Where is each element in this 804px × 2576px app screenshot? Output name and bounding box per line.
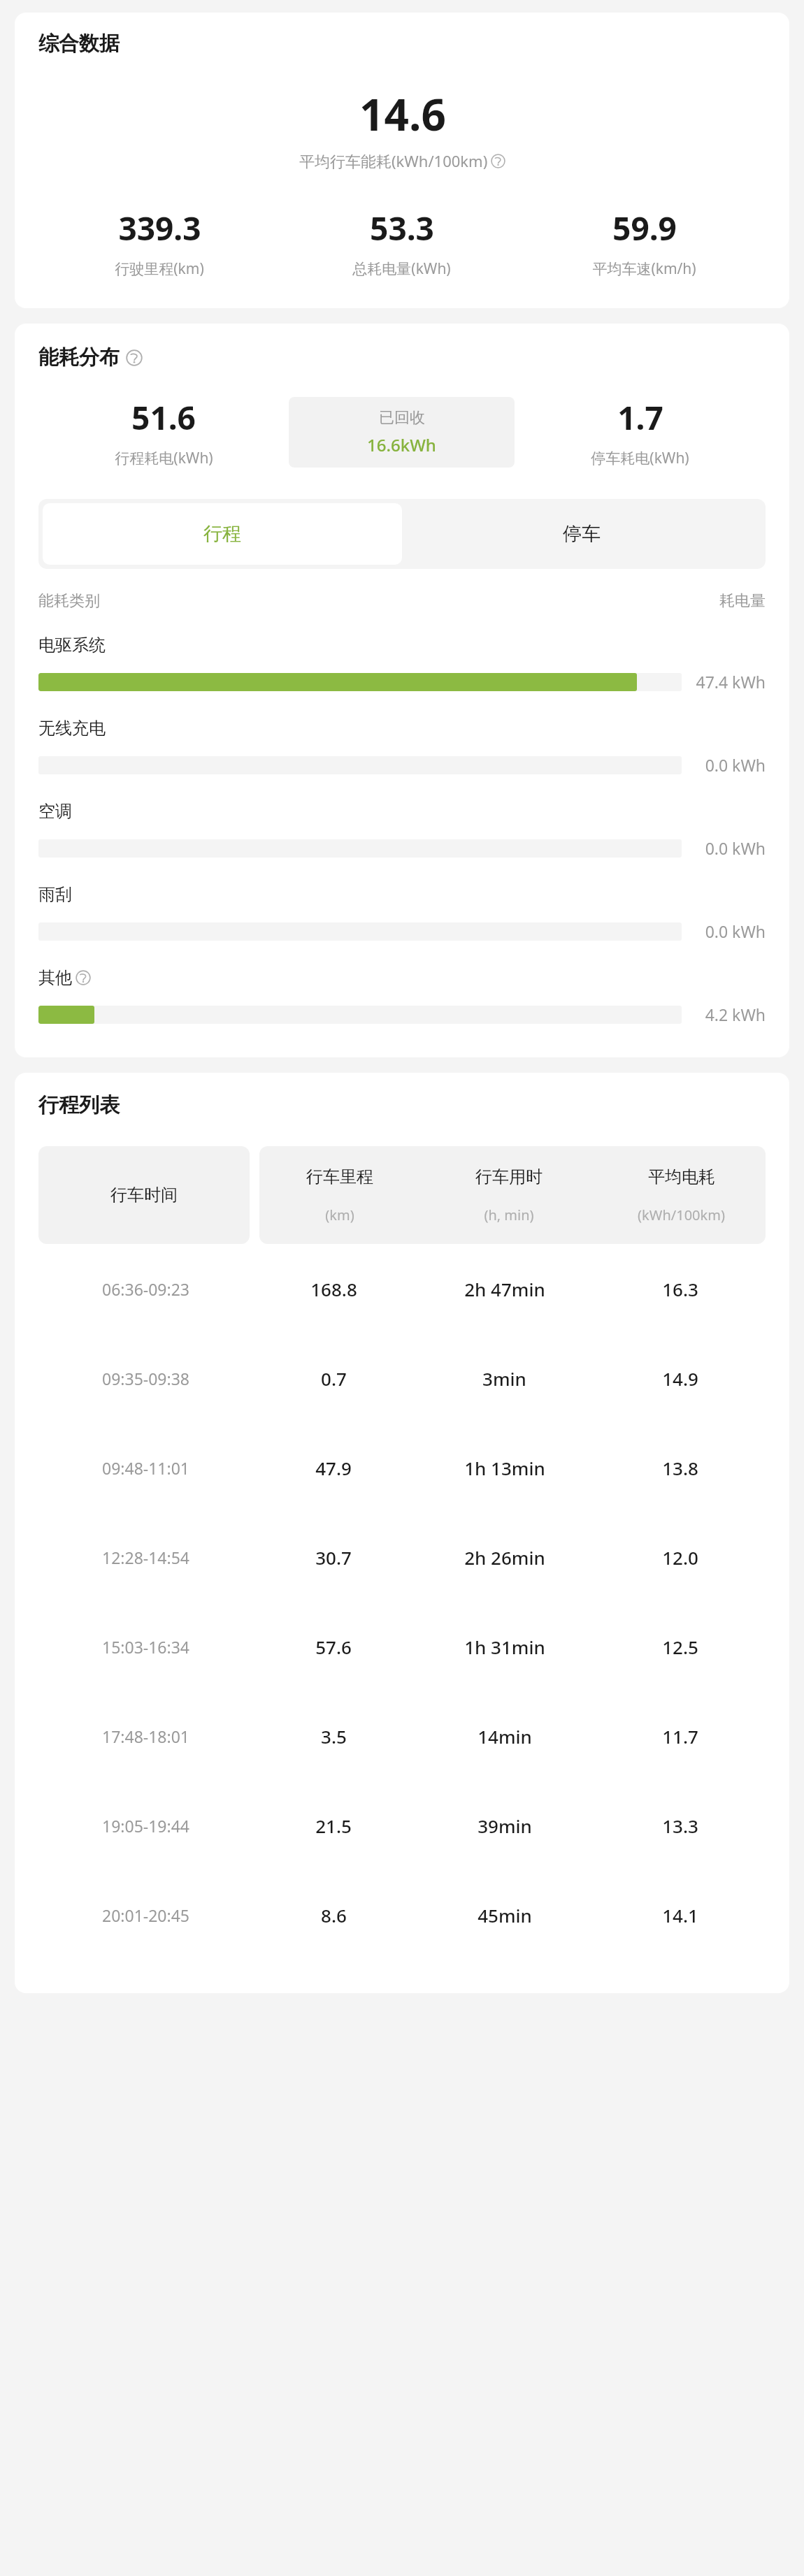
staticText: 12.5	[662, 1635, 698, 1659]
button[interactable]: 停车	[402, 503, 761, 565]
staticText: 14.1	[662, 1903, 698, 1927]
staticText: (h, min)	[484, 1206, 534, 1224]
staticText: 0.0 kWh	[705, 920, 766, 942]
staticText: 停车耗电(kWh)	[591, 448, 689, 468]
staticText: 3.5	[321, 1724, 347, 1749]
staticText: 47.9	[315, 1456, 352, 1480]
button[interactable]: 平均行车能耗(kWh/100km)	[299, 150, 505, 171]
staticText: 12:28-14:54	[102, 1547, 189, 1568]
button[interactable]: 行程	[43, 503, 402, 565]
staticText: 平均电耗	[648, 1166, 715, 1187]
staticText: 0.7	[321, 1366, 347, 1391]
staticText: 13.8	[662, 1456, 698, 1480]
staticText: 4.2 kWh	[705, 1004, 766, 1025]
staticText: 1.7	[617, 396, 663, 440]
button[interactable]: 能耗分布	[38, 345, 143, 370]
staticText: 30.7	[315, 1545, 352, 1570]
staticText: 能耗分布	[38, 345, 120, 370]
staticText: 13.3	[662, 1814, 698, 1838]
staticText: 12.0	[662, 1545, 698, 1570]
staticText: 平均行车能耗(kWh/100km)	[299, 150, 488, 171]
staticText: 39min	[478, 1814, 532, 1838]
staticText: 已回收	[379, 408, 425, 428]
staticText: 45min	[478, 1903, 532, 1927]
staticText: 综合数据	[38, 31, 120, 57]
staticText: 1h 31min	[464, 1635, 545, 1659]
staticText: 耗电量	[719, 591, 766, 611]
staticText: 339.3	[118, 206, 201, 250]
staticText: 行程	[203, 522, 241, 546]
staticText: 09:48-11:01	[102, 1457, 189, 1479]
staticText: 能耗类别	[38, 591, 100, 611]
staticText: 8.6	[321, 1903, 347, 1927]
staticText: 57.6	[315, 1635, 352, 1659]
staticText: (kWh/100km)	[638, 1206, 725, 1224]
staticText: 16.6kWh	[367, 433, 436, 456]
staticText: 行程耗电(kWh)	[115, 448, 213, 468]
staticText: 1h 13min	[464, 1456, 545, 1480]
staticText: 0.0 kWh	[705, 837, 766, 859]
staticText: 09:35-09:38	[102, 1368, 189, 1389]
staticText: 空调	[38, 801, 72, 822]
staticText: 19:05-19:44	[102, 1815, 189, 1837]
staticText: 15:03-16:34	[102, 1636, 189, 1658]
staticText: 21.5	[315, 1814, 352, 1838]
staticText: 14.6	[359, 85, 446, 143]
staticText: 51.6	[131, 396, 196, 440]
staticText: 168.8	[310, 1277, 357, 1301]
staticText: 2h 26min	[464, 1545, 545, 1570]
staticText: 17:48-18:01	[102, 1725, 189, 1747]
staticText: 雨刮	[38, 884, 72, 905]
staticText: 14min	[478, 1724, 532, 1749]
staticText: 59.9	[612, 206, 677, 250]
staticText: 行车里程	[306, 1166, 373, 1187]
staticText: (km)	[325, 1206, 354, 1224]
staticText: 06:36-09:23	[102, 1278, 189, 1300]
staticText: 47.4 kWh	[696, 671, 766, 693]
staticText: 停车	[563, 522, 601, 546]
staticText: 行车用时	[475, 1166, 543, 1187]
staticText: 0.0 kWh	[705, 754, 766, 776]
staticText: 无线充电	[38, 718, 106, 739]
staticText: 总耗电量(kWh)	[352, 259, 451, 279]
staticText: 16.3	[662, 1277, 698, 1301]
staticText: 14.9	[662, 1366, 698, 1391]
staticText: 3min	[482, 1366, 526, 1391]
staticText: 20:01-20:45	[102, 1904, 189, 1926]
staticText: 行驶里程(km)	[115, 259, 204, 279]
staticText: 平均车速(km/h)	[592, 259, 696, 279]
staticText: 其他	[38, 967, 72, 988]
staticText: 53.3	[370, 206, 434, 250]
staticText: 行车时间	[110, 1185, 178, 1206]
staticText: 2h 47min	[464, 1277, 545, 1301]
staticText: 行程列表	[38, 1092, 120, 1118]
staticText: 电驱系统	[38, 635, 106, 656]
staticText: 11.7	[662, 1724, 698, 1749]
